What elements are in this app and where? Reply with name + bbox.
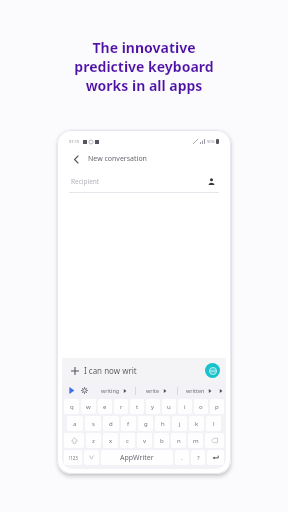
staticText: written [186, 387, 205, 394]
staticText: Recipient [71, 177, 100, 186]
button[interactable]: ? [191, 450, 205, 465]
staticText: c [126, 437, 129, 445]
staticText: The innovative predictive keyboard works… [74, 38, 214, 95]
button[interactable]: z [86, 433, 101, 448]
button[interactable]: u [162, 399, 176, 414]
staticText: d [109, 420, 113, 428]
staticText: write [146, 387, 160, 394]
button[interactable]: Back [69, 152, 83, 166]
staticText: m [193, 437, 199, 445]
staticText: o [199, 403, 203, 411]
button[interactable]: Voice input [84, 450, 99, 465]
button[interactable]: Settings [78, 384, 91, 397]
button[interactable]: x [103, 433, 118, 448]
staticText: w [86, 403, 91, 411]
button[interactable]: b [154, 433, 169, 448]
staticText: e [103, 403, 107, 411]
button[interactable]: o [194, 399, 208, 414]
button[interactable]: h [155, 416, 170, 431]
staticText: g [144, 420, 148, 428]
button[interactable]: t [130, 399, 144, 414]
staticText: l [213, 420, 215, 428]
button[interactable]: Enter [207, 450, 224, 465]
button[interactable]: Add attachment [68, 364, 81, 377]
button[interactable]: n [171, 433, 186, 448]
button[interactable]: g [138, 416, 153, 431]
staticText: u [167, 403, 171, 411]
button[interactable]: r [114, 399, 128, 414]
button[interactable]: Contacts [205, 175, 217, 187]
button[interactable]: q [64, 399, 79, 414]
staticText: !123 [69, 455, 78, 461]
staticText: New conversation [88, 154, 147, 164]
button[interactable]: AppWriter [101, 450, 173, 465]
staticText: x [109, 437, 113, 445]
button[interactable]: m [188, 433, 203, 448]
button[interactable]: Shift [64, 433, 84, 448]
staticText: writing [101, 387, 120, 394]
button[interactable]: j [172, 416, 187, 431]
staticText: t [136, 403, 139, 411]
staticText: z [92, 437, 95, 445]
button[interactable]: writing [93, 383, 135, 398]
button[interactable]: write [136, 383, 177, 398]
staticText: 07:15 [69, 139, 80, 144]
staticText: ? [197, 454, 200, 462]
staticText: 90% [207, 139, 215, 144]
button[interactable]: Play [65, 384, 78, 397]
button[interactable]: f [121, 416, 136, 431]
staticText: q [70, 403, 74, 411]
staticText: a [73, 420, 77, 428]
staticText: h [161, 420, 165, 428]
button[interactable]: written [178, 383, 219, 398]
button[interactable]: !123 [64, 450, 82, 465]
staticText: f [127, 420, 130, 428]
button[interactable]: d [103, 416, 119, 431]
button[interactable]: y [146, 399, 160, 414]
button[interactable]: c [120, 433, 135, 448]
button[interactable]: s [85, 416, 101, 431]
button[interactable]: . [175, 450, 189, 465]
staticText: i [184, 403, 186, 411]
staticText: r [120, 403, 123, 411]
staticText: s [92, 420, 95, 428]
button[interactable]: p [210, 399, 224, 414]
button[interactable]: w [81, 399, 96, 414]
button[interactable]: a [67, 416, 83, 431]
staticText: y [151, 403, 155, 411]
staticText: b [160, 437, 164, 445]
button[interactable]: k [189, 416, 204, 431]
staticText: I can now writ [84, 365, 137, 376]
staticText: AppWriter [120, 453, 154, 463]
staticText: . [181, 454, 183, 462]
staticText: p [215, 403, 219, 411]
button[interactable]: e [98, 399, 112, 414]
staticText: j [179, 420, 181, 428]
staticText: v [143, 437, 147, 445]
button[interactable]: v [137, 433, 152, 448]
staticText: k [195, 420, 199, 428]
button[interactable]: Send [205, 363, 220, 378]
button[interactable]: i [178, 399, 192, 414]
button[interactable]: l [206, 416, 221, 431]
button[interactable]: Backspace [205, 433, 224, 448]
staticText: n [177, 437, 181, 445]
